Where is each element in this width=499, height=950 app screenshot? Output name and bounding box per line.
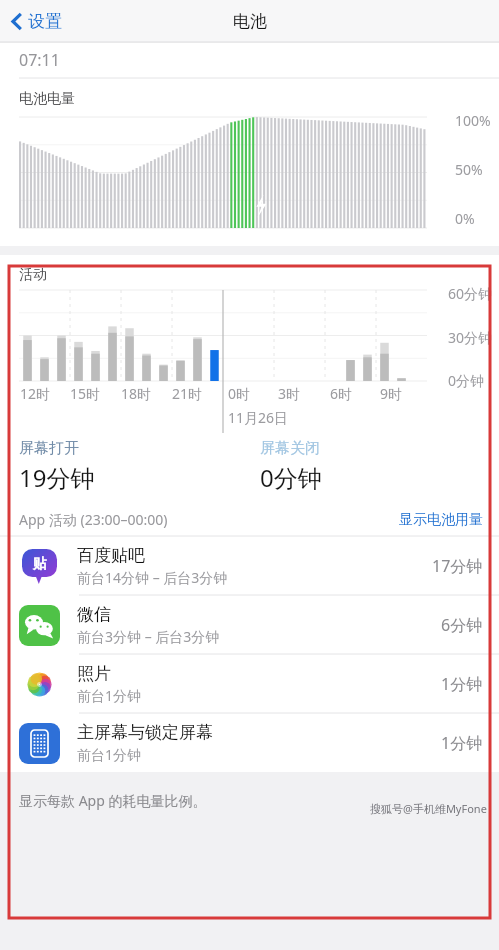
staticText: 1分钟 bbox=[441, 732, 483, 754]
staticText: 前台1分钟 bbox=[77, 686, 142, 705]
staticText: 15时 bbox=[70, 384, 101, 403]
staticText: 1分钟 bbox=[441, 673, 483, 695]
staticText: 显示电池用量 bbox=[399, 511, 483, 529]
staticText: 屏幕关闭 bbox=[260, 439, 320, 458]
staticText: 11月26日 bbox=[228, 408, 289, 427]
staticText: 主屏幕与锁定屏幕 bbox=[77, 722, 213, 743]
staticText: 百度贴吧 bbox=[77, 545, 145, 566]
staticText: 100% bbox=[455, 111, 491, 130]
button[interactable]: Back bbox=[7, 6, 66, 37]
staticText: 6分钟 bbox=[441, 614, 483, 636]
staticText: 前台3分钟 – 后台3分钟 bbox=[77, 627, 220, 646]
staticText: 活动 bbox=[19, 266, 47, 284]
staticText: 0分钟 bbox=[260, 461, 322, 494]
staticText: 显示每款 App 的耗电量比例。 bbox=[19, 791, 207, 810]
staticText: 0分钟 bbox=[448, 371, 485, 390]
staticText: 搜狐号@手机维MyFone bbox=[370, 801, 487, 816]
staticText: 屏幕打开 bbox=[19, 439, 79, 458]
staticText: 设置 bbox=[28, 11, 62, 32]
staticText: 18时 bbox=[121, 384, 152, 403]
button[interactable]: 照片 bbox=[0, 655, 499, 713]
staticText: 前台14分钟 – 后台3分钟 bbox=[77, 568, 228, 587]
button[interactable]: 贴 bbox=[0, 537, 499, 595]
staticText: 0% bbox=[455, 209, 475, 228]
button[interactable]: 显示电池用量 bbox=[399, 511, 483, 529]
staticText: 9时 bbox=[380, 384, 403, 403]
staticText: 电池 bbox=[233, 11, 267, 32]
button[interactable]: 主屏幕与锁定屏幕 bbox=[0, 714, 499, 772]
staticText: 照片 bbox=[77, 663, 111, 684]
staticText: 07:11 bbox=[19, 49, 60, 71]
other: Back bbox=[11, 12, 23, 31]
staticText: 19分钟 bbox=[19, 461, 95, 494]
staticText: 0时 bbox=[228, 384, 251, 403]
staticText: 21时 bbox=[172, 384, 203, 403]
staticText: 50% bbox=[455, 160, 483, 179]
staticText: 3时 bbox=[278, 384, 301, 403]
staticText: 17分钟 bbox=[432, 555, 483, 577]
staticText: 6时 bbox=[330, 384, 353, 403]
staticText: 微信 bbox=[77, 604, 111, 625]
staticText: 12时 bbox=[20, 384, 51, 403]
staticText: App 活动 (23:00–00:00) bbox=[19, 510, 168, 529]
staticText: 贴 bbox=[33, 555, 47, 573]
button[interactable]: 微信 bbox=[0, 596, 499, 654]
staticText: 电池电量 bbox=[19, 90, 75, 108]
staticText: 60分钟 bbox=[448, 284, 493, 303]
staticText: 前台1分钟 bbox=[77, 745, 142, 764]
staticText: 30分钟 bbox=[448, 328, 493, 347]
